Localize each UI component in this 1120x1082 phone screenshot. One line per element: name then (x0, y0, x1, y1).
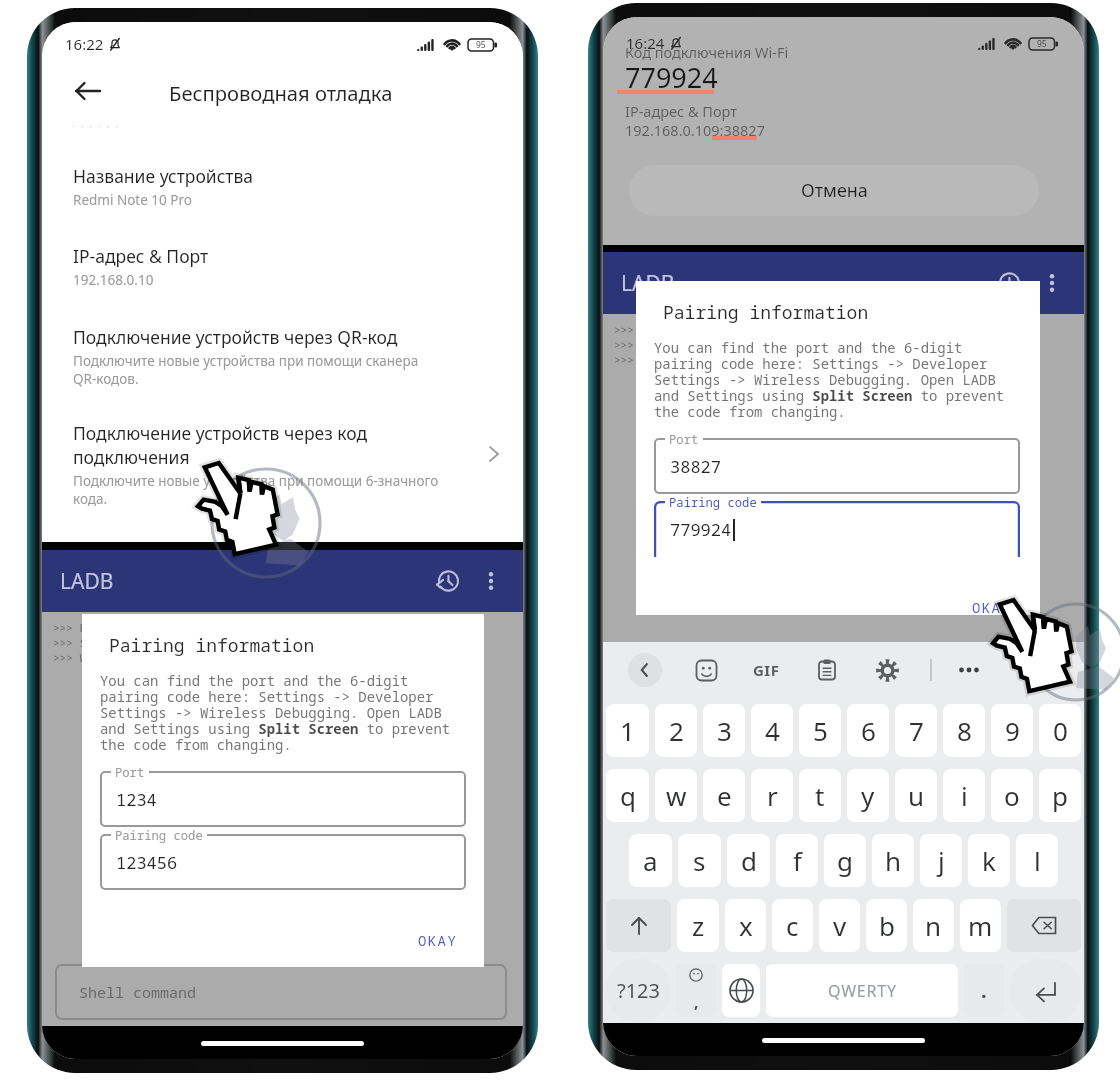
button[interactable]: p (1039, 769, 1081, 822)
staticText: Pairing information (663, 300, 869, 325)
staticText: 38827 (670, 455, 721, 478)
button[interactable]: Open (478, 438, 510, 470)
button[interactable]: 4 (751, 704, 793, 757)
button[interactable]: Shift (606, 899, 671, 952)
button[interactable]: QWERTY (766, 964, 958, 1017)
button[interactable]: x (725, 899, 766, 952)
button[interactable]: v (819, 899, 860, 952)
button[interactable]: Emoji and comma (676, 964, 716, 1017)
button[interactable]: More options (473, 563, 509, 599)
button[interactable]: Back (69, 72, 107, 110)
button[interactable]: Shell command (55, 964, 507, 1020)
button[interactable]: f (776, 834, 818, 887)
button[interactable]: 8 (943, 704, 985, 757)
button[interactable]: More (952, 653, 986, 687)
staticText: Название устройства (73, 164, 254, 188)
staticText: e (717, 778, 732, 813)
button[interactable]: b (866, 899, 907, 952)
staticText: f (793, 843, 802, 878)
button[interactable]: Enter (1009, 959, 1082, 1022)
staticText: n (925, 908, 942, 943)
button[interactable]: Stickers (689, 653, 723, 687)
button[interactable]: r (751, 769, 793, 822)
button[interactable]: . (964, 964, 1004, 1017)
button[interactable]: 9 (991, 704, 1033, 757)
button[interactable]: Backspace (1007, 899, 1081, 952)
staticText: 95 (1037, 38, 1047, 50)
staticText: 123456 (116, 851, 178, 874)
button[interactable]: ?123 (605, 959, 671, 1022)
button[interactable]: More options (1034, 265, 1070, 301)
button[interactable]: 5 (799, 704, 841, 757)
button[interactable]: Подключение устройств через код (73, 421, 503, 508)
button[interactable]: Отмена (629, 165, 1039, 216)
staticText: v (833, 908, 847, 943)
staticText: 192.168.0.109:38827 (625, 120, 765, 140)
button[interactable]: Back (628, 653, 662, 687)
button[interactable]: c (772, 899, 813, 952)
staticText: u (908, 778, 925, 813)
staticText: m (968, 908, 993, 943)
staticText: Код подключения Wi-Fi (625, 42, 789, 62)
staticText: , (694, 991, 699, 1013)
staticText: Подключите новые устройства при помощи 6… (73, 472, 439, 490)
button[interactable]: t (799, 769, 841, 822)
button[interactable]: History (427, 561, 467, 601)
staticText: 16:24 (626, 33, 665, 53)
staticText: OKAY (972, 598, 1012, 617)
button[interactable]: z (677, 899, 719, 952)
button[interactable]: IP-адрес & Порт (73, 244, 503, 289)
button[interactable]: 7 (895, 704, 937, 757)
button[interactable]: 1 (606, 704, 649, 757)
button[interactable]: g (824, 834, 866, 887)
button[interactable]: GIF (749, 656, 784, 684)
button[interactable]: s (678, 834, 721, 887)
button[interactable]: d (727, 834, 770, 887)
button[interactable]: 6 (847, 704, 889, 757)
button[interactable]: Clipboard (810, 653, 844, 687)
staticText: Подключение устройств через QR-код (73, 325, 398, 349)
staticText: 192.168.0.10 (73, 271, 154, 289)
staticText: k (982, 843, 996, 878)
staticText: >>> P (53, 620, 86, 635)
button[interactable]: a (629, 834, 672, 887)
staticText: j (938, 843, 945, 878)
button[interactable]: h (872, 834, 914, 887)
button[interactable]: w (655, 769, 697, 822)
staticText: QWERTY (828, 980, 897, 1002)
staticText: >>> S (614, 337, 647, 352)
button[interactable]: Подключение устройств через QR-код (73, 325, 503, 388)
button[interactable]: m (960, 899, 1001, 952)
button[interactable]: 0 (1039, 704, 1081, 757)
button[interactable]: o (991, 769, 1033, 822)
button[interactable]: j (920, 834, 962, 887)
staticText: 779924 (625, 59, 718, 96)
button[interactable]: k (968, 834, 1010, 887)
staticText: Port (115, 764, 145, 781)
button[interactable]: i (943, 769, 985, 822)
button[interactable]: Change language (722, 964, 760, 1017)
button[interactable]: 2 (655, 704, 697, 757)
staticText: q (620, 778, 636, 813)
button[interactable]: OKAY (410, 926, 466, 955)
staticText: You can find the port and the 6-digit pa… (100, 671, 451, 754)
staticText: l (1034, 843, 1041, 878)
button[interactable]: y (847, 769, 889, 822)
staticText: Shell command (79, 982, 197, 1002)
button[interactable]: q (606, 769, 649, 822)
staticText: d (741, 843, 757, 878)
button[interactable]: u (895, 769, 937, 822)
staticText: o (1004, 778, 1020, 813)
button[interactable]: n (913, 899, 954, 952)
button[interactable]: Settings (870, 653, 904, 687)
button[interactable]: OKAY (964, 593, 1020, 622)
staticText: ?123 (617, 977, 660, 1004)
button[interactable]: Название устройства (73, 164, 503, 209)
staticText: >>> S (53, 635, 86, 650)
button[interactable]: e (703, 769, 745, 822)
staticText: >>> W (53, 650, 86, 665)
staticText: i (961, 778, 968, 813)
button[interactable]: 3 (703, 704, 745, 757)
button[interactable]: l (1016, 834, 1058, 887)
button[interactable]: History (988, 263, 1028, 303)
